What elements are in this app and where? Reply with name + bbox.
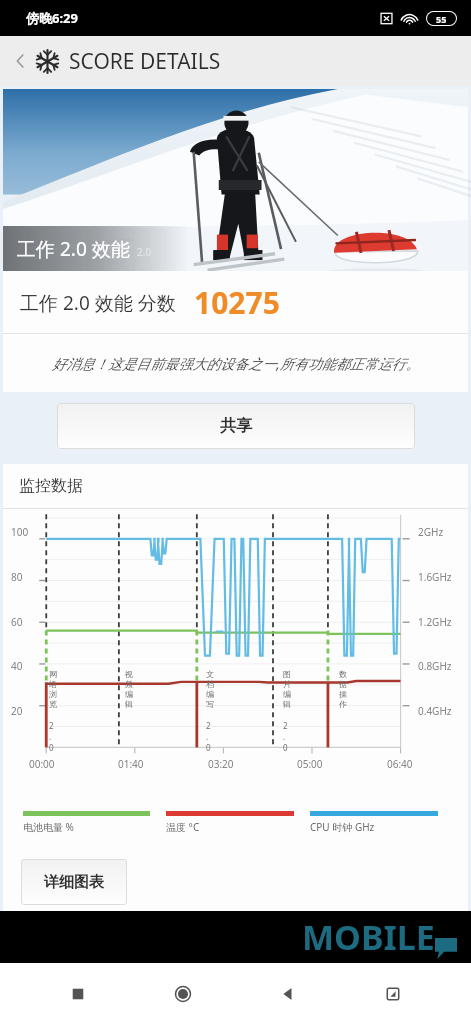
staticText: 档 bbox=[206, 679, 214, 689]
staticText: 视 bbox=[125, 669, 133, 679]
staticText: 2GHz bbox=[418, 525, 444, 539]
staticText: 据 bbox=[339, 679, 347, 689]
button[interactable]: Split screen bbox=[366, 967, 420, 1021]
staticText: 览 bbox=[49, 699, 57, 709]
staticText: 片 bbox=[283, 679, 291, 689]
staticText: 工作 2.0 效能 bbox=[17, 236, 130, 262]
staticText: 06:40 bbox=[387, 757, 413, 771]
staticText: 图 bbox=[283, 669, 291, 679]
staticText: 01:40 bbox=[118, 757, 144, 771]
button[interactable]: Home bbox=[156, 967, 210, 1021]
staticText: 辑 bbox=[283, 699, 291, 709]
staticText: 编 bbox=[283, 689, 291, 699]
staticText: SCORE DETAILS bbox=[69, 47, 221, 76]
staticText: 60 bbox=[11, 615, 23, 629]
staticText: 络 bbox=[49, 679, 57, 689]
staticText: 40 bbox=[11, 659, 23, 673]
staticText: 浏 bbox=[49, 689, 57, 699]
button[interactable]: 详细图表 bbox=[21, 859, 127, 905]
staticText: 电池电量 % bbox=[23, 820, 74, 834]
staticText: CPU 时钟 GHz bbox=[310, 820, 375, 834]
staticText: 1.2GHz bbox=[418, 615, 452, 629]
staticText: 05:00 bbox=[297, 757, 323, 771]
staticText: 2 bbox=[283, 720, 288, 731]
staticText: 编 bbox=[206, 689, 214, 699]
staticText: 共享 bbox=[220, 416, 252, 436]
button[interactable]: Back bbox=[261, 967, 315, 1021]
staticText: MOBILE bbox=[302, 914, 435, 960]
staticText: 0 bbox=[49, 742, 54, 753]
staticText: 03:20 bbox=[208, 757, 234, 771]
staticText: 辑 bbox=[125, 699, 133, 709]
staticText: 监控数据 bbox=[19, 476, 83, 496]
staticText: . bbox=[283, 731, 286, 742]
staticText: 2.0 bbox=[137, 245, 152, 259]
staticText: 文 bbox=[206, 669, 214, 679]
staticText: 网 bbox=[49, 669, 57, 679]
staticText: 1.6GHz bbox=[418, 570, 452, 584]
staticText: 数 bbox=[339, 669, 347, 679]
staticText: 80 bbox=[11, 570, 23, 584]
staticText: 傍晚6:29 bbox=[26, 9, 78, 27]
staticText: 操 bbox=[339, 689, 347, 699]
staticText: 编 bbox=[125, 689, 133, 699]
staticText: 2 bbox=[49, 720, 54, 731]
staticText: 100 bbox=[11, 525, 29, 539]
staticText: 0.8GHz bbox=[418, 659, 452, 673]
staticText: 写 bbox=[206, 699, 214, 709]
staticText: . bbox=[49, 731, 52, 742]
staticText: 温度 °C bbox=[166, 820, 200, 834]
staticText: 作 bbox=[339, 699, 347, 709]
staticText: 0.4GHz bbox=[418, 704, 452, 718]
staticText: . bbox=[206, 731, 209, 742]
staticText: 55 bbox=[436, 13, 447, 25]
button[interactable]: 共享 bbox=[57, 403, 415, 449]
staticText: 0 bbox=[206, 742, 211, 753]
staticText: 20 bbox=[11, 704, 23, 718]
button[interactable]: Back bbox=[5, 46, 35, 76]
staticText: 0 bbox=[283, 742, 288, 753]
staticText: 工作 2.0 效能 分数 bbox=[20, 290, 176, 316]
staticText: 详细图表 bbox=[44, 873, 104, 892]
staticText: 00:00 bbox=[29, 757, 55, 771]
staticText: 频 bbox=[125, 679, 133, 689]
staticText: 2 bbox=[206, 720, 211, 731]
staticText: 好消息！这是目前最强大的设备之一,所有功能都正常运行。 bbox=[52, 354, 420, 373]
button[interactable]: Recents bbox=[51, 967, 105, 1021]
staticText: 10275 bbox=[194, 282, 280, 323]
